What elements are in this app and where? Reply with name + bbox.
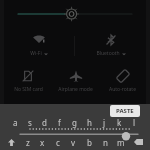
button[interactable]: f [52, 116, 67, 128]
button[interactable]: Auto-rotate [99, 66, 146, 100]
button[interactable]: v [65, 136, 81, 148]
button[interactable]: c [50, 136, 65, 148]
button[interactable]: x [35, 136, 50, 148]
staticText: Airplane mode [58, 86, 93, 93]
staticText: k [117, 117, 122, 128]
staticText: j [103, 117, 106, 128]
staticText: h [87, 117, 92, 128]
button[interactable]: Airplane mode [52, 66, 99, 100]
staticText: a [13, 117, 18, 128]
staticText: n [103, 137, 108, 148]
staticText: z [26, 137, 30, 148]
button[interactable]: g [67, 116, 82, 128]
button[interactable]: z [20, 136, 35, 148]
button[interactable]: b [81, 136, 97, 148]
staticText: v [71, 137, 76, 148]
button[interactable]: n [97, 136, 113, 148]
button[interactable]: No SIM card [4, 66, 52, 100]
staticText: d [42, 117, 47, 128]
button[interactable]: Wi-Fi [4, 30, 74, 62]
staticText: Auto-rotate [109, 86, 136, 93]
staticText: PASTE [116, 107, 134, 115]
button[interactable]: k [112, 116, 127, 128]
staticText: f [58, 117, 61, 128]
staticText: c [56, 137, 60, 148]
button[interactable]: Text selection slider [0, 126, 150, 142]
staticText: s [28, 117, 32, 128]
button[interactable]: h [82, 116, 97, 128]
button[interactable]: Backspace [129, 136, 148, 148]
button[interactable]: a [8, 116, 22, 128]
button[interactable]: PASTE [110, 105, 140, 117]
staticText: m [117, 137, 125, 148]
button[interactable]: m [113, 136, 129, 148]
staticText: x [40, 137, 45, 148]
button[interactable]: s [22, 116, 37, 128]
staticText: b [87, 137, 92, 148]
staticText: g [72, 117, 77, 128]
button[interactable]: Bluetooth [75, 30, 146, 62]
button[interactable]: l [127, 116, 142, 128]
staticText: No SIM card [14, 86, 43, 93]
staticText: Wi-Fi [30, 50, 42, 57]
staticText: Bluetooth [96, 50, 120, 57]
button[interactable]: j [97, 116, 112, 128]
button[interactable]: Brightness [4, 6, 146, 22]
staticText: l [133, 117, 136, 128]
button[interactable]: Shift [2, 136, 20, 148]
button[interactable]: d [37, 116, 52, 128]
